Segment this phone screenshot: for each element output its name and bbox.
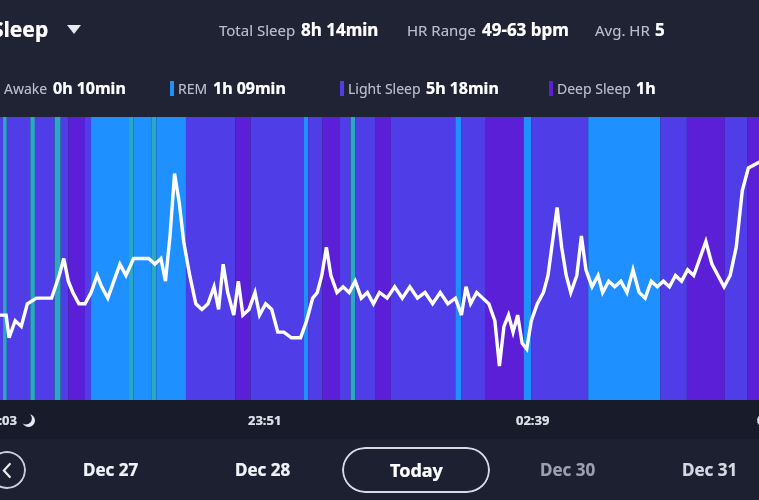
staticText: Light Sleep <box>348 79 421 98</box>
staticText: Awake <box>4 79 48 98</box>
staticText: 1h <box>636 77 656 99</box>
staticText: 02:39 <box>516 411 550 429</box>
staticText: 5h 18min <box>426 77 499 99</box>
staticText: HR Range <box>407 20 477 40</box>
button[interactable]: Dec 28 <box>227 450 299 489</box>
button[interactable]: Previous dates <box>0 451 26 489</box>
button[interactable]: Dec 27 <box>75 450 147 489</box>
staticText: 1h 09min <box>213 77 286 99</box>
staticText: 49-63 bpm <box>482 18 569 41</box>
button[interactable]: Dec 31 <box>674 450 746 489</box>
staticText: 8h 14min <box>301 18 379 41</box>
button[interactable]: Dec 30 <box>532 450 604 489</box>
staticText: REM <box>178 79 208 98</box>
staticText: Dec 27 <box>83 458 139 481</box>
staticText: Avg. HR <box>595 20 650 40</box>
staticText: Total Sleep <box>219 20 296 40</box>
staticText: Sleep <box>0 15 49 44</box>
staticText: 23:51 <box>248 411 282 429</box>
staticText: Dec 28 <box>235 458 291 481</box>
staticText: 1:03 <box>0 411 17 429</box>
staticText: 0 <box>757 411 759 429</box>
button[interactable]: Sleep <box>0 11 87 48</box>
staticText: Today <box>390 458 443 483</box>
staticText: 0h 10min <box>53 77 126 99</box>
staticText: 5 <box>655 18 665 41</box>
staticText: Dec 30 <box>540 458 596 481</box>
button[interactable]: Today <box>342 447 490 493</box>
staticText: Dec 31 <box>682 458 738 481</box>
staticText: Deep Sleep <box>557 79 631 98</box>
